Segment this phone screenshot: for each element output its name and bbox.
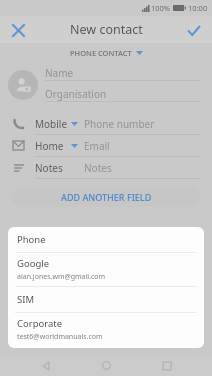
staticText: Notes: [84, 161, 112, 175]
button[interactable]: Save contact: [182, 18, 206, 42]
staticText: Corporate: [17, 317, 63, 330]
button[interactable]: Notes: [12, 157, 200, 179]
staticText: 100%: [151, 3, 171, 13]
staticText: SIM: [17, 293, 35, 306]
button[interactable]: Google: [8, 253, 204, 286]
staticText: Phone: [17, 233, 46, 246]
button[interactable]: ADD ANOTHER FIELD: [11, 187, 201, 207]
button[interactable]: Back: [31, 355, 61, 376]
button[interactable]: Home: [91, 355, 121, 376]
staticText: Home: [35, 139, 64, 153]
button[interactable]: Recent apps: [152, 355, 182, 376]
button[interactable]: PHONE CONTACT: [0, 46, 212, 60]
button[interactable]: Corporate: [8, 313, 204, 346]
staticText: PHONE CONTACT: [70, 48, 132, 58]
staticText: ADD ANOTHER FIELD: [61, 191, 152, 203]
button[interactable]: Name: [45, 66, 200, 81]
staticText: Mobile: [35, 117, 68, 131]
staticText: Email: [84, 139, 110, 153]
staticText: alan.jones.wm@gmail.com: [17, 272, 106, 282]
button[interactable]: Mobile: [12, 113, 200, 135]
button[interactable]: Phone: [8, 227, 204, 252]
button[interactable]: Organisation: [45, 87, 200, 102]
button[interactable]: Close: [6, 18, 30, 42]
staticText: Phone number: [84, 117, 155, 131]
button[interactable]: Add photo: [8, 70, 38, 100]
staticText: New contact: [70, 21, 143, 38]
staticText: Google: [17, 257, 50, 270]
staticText: test6@worldmanuals.com: [17, 332, 103, 342]
staticText: 10:00: [188, 3, 208, 13]
staticText: Notes: [35, 161, 63, 175]
button[interactable]: Home: [12, 135, 200, 157]
button[interactable]: SIM: [8, 287, 204, 312]
staticText: Organisation: [45, 87, 107, 101]
staticText: Name: [45, 66, 74, 80]
